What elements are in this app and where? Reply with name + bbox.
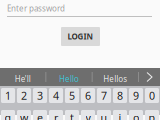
staticText: u [100,110,107,120]
button[interactable]: u [97,110,111,120]
button[interactable]: r [49,110,63,120]
button[interactable]: LOGIN [61,27,100,46]
button[interactable]: 2 [17,88,31,103]
button[interactable]: w [17,110,31,120]
staticText: o [133,110,139,120]
button[interactable]: i [113,110,127,120]
button[interactable]: He'll [0,68,45,86]
staticText: w [20,110,28,120]
button[interactable]: 6 [81,88,95,103]
staticText: 9 [133,88,139,103]
staticText: e [37,110,43,120]
staticText: q [4,110,11,120]
staticText: Hello [59,74,79,84]
staticText: Hellos [103,74,127,84]
staticText: 0 [149,88,155,103]
button[interactable]: e [33,110,47,120]
staticText: He'll [15,74,31,84]
staticText: 3 [37,88,43,103]
button[interactable]: More suggestions [139,68,160,86]
button[interactable]: 9 [129,88,143,103]
button[interactable]: 4 [49,88,63,103]
button[interactable]: o [129,110,143,120]
staticText: 5 [69,88,75,103]
button[interactable]: 3 [33,88,47,103]
staticText: 7 [101,88,107,103]
button[interactable]: t [65,110,79,120]
button[interactable]: 1 [1,88,15,103]
staticText: 6 [85,88,91,103]
button[interactable]: Hello [46,68,92,86]
staticText: 2 [21,88,27,103]
staticText: 8 [117,88,123,103]
staticText: t [70,110,74,120]
button[interactable]: 0 [145,88,159,103]
button[interactable]: 5 [65,88,79,103]
staticText: r [54,110,58,120]
staticText: LOGIN [67,31,93,42]
button[interactable]: y [81,110,95,120]
button[interactable]: q [1,110,15,120]
staticText: i [118,110,121,120]
staticText: 1 [5,88,11,103]
button[interactable]: p [145,110,159,120]
staticText: 4 [53,88,59,103]
staticText: Enter password [7,3,65,14]
staticText: y [85,110,90,120]
button[interactable]: 7 [97,88,111,103]
staticText: p [148,110,155,120]
button[interactable]: 8 [113,88,127,103]
button[interactable]: Hellos [93,68,138,86]
